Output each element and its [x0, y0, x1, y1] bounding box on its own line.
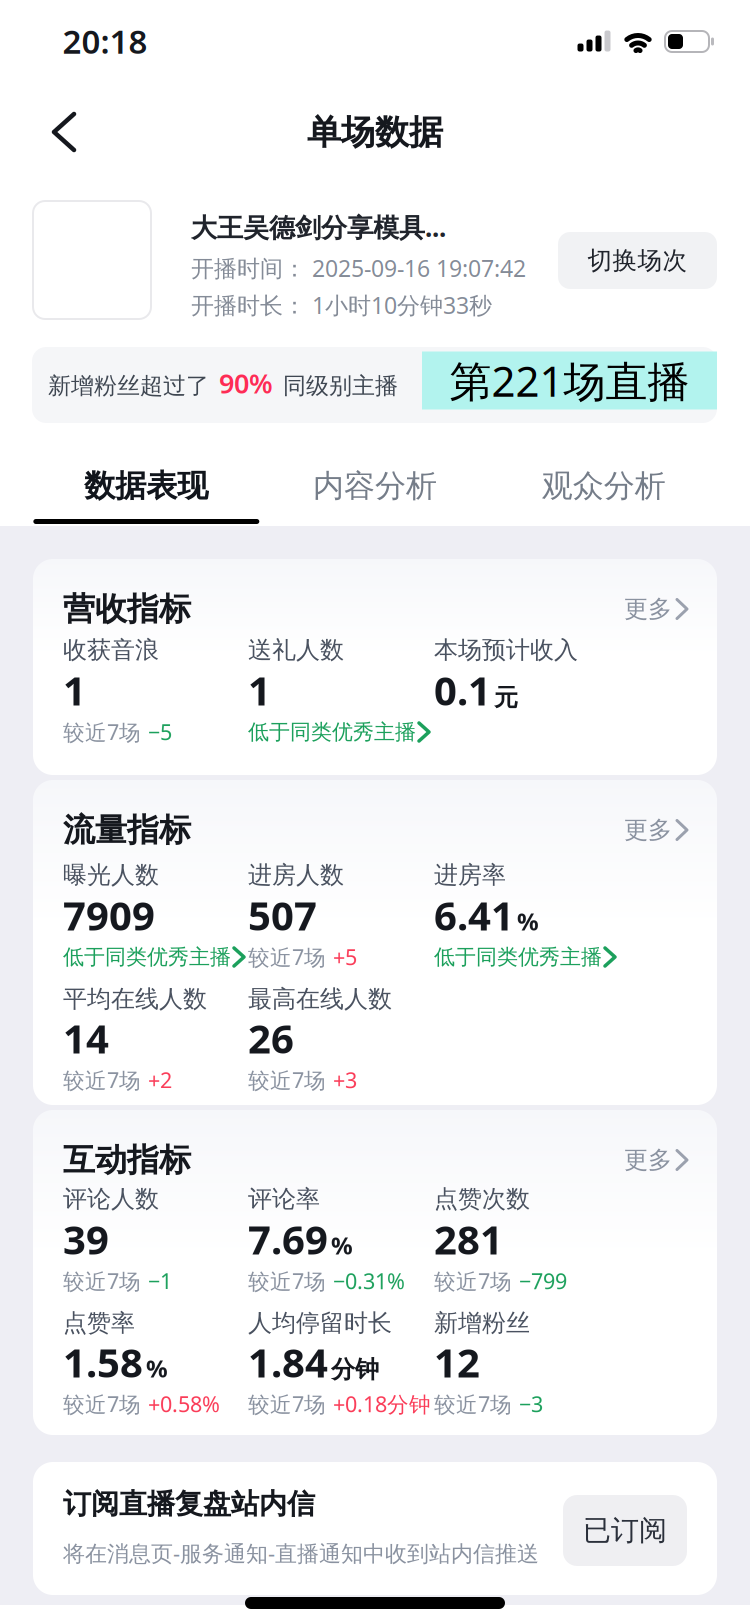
button[interactable]: 低于同类优秀主播 — [434, 944, 615, 970]
staticText: 90% — [219, 365, 273, 401]
staticText: 较近7场 — [63, 1065, 141, 1095]
button[interactable]: 低于同类优秀主播 — [63, 944, 244, 970]
staticText: 流量指标 — [63, 810, 191, 850]
staticText: % — [146, 1352, 168, 1385]
staticText: 第221场直播 — [449, 352, 689, 409]
staticText: 新增粉丝 — [434, 1308, 530, 1338]
staticText: 281 — [434, 1212, 503, 1266]
staticText: 7.69 — [248, 1212, 328, 1266]
staticText: +3 — [333, 1065, 357, 1095]
staticText: 将在消息页-服务通知-直播通知中收到站内信推送 — [63, 1538, 539, 1568]
staticText: 互动指标 — [63, 1140, 191, 1180]
staticText: 较近7场 — [63, 717, 141, 747]
staticText: 较近7场 — [434, 1389, 512, 1419]
staticText: 1.84 — [248, 1335, 328, 1389]
staticText: 观众分析 — [542, 466, 666, 506]
staticText: 开播时间： 2025-09-16 19:07:42 — [191, 252, 526, 284]
staticText: 较近7场 — [63, 1266, 141, 1296]
staticText: 更多 — [624, 594, 672, 624]
staticText: 26 — [248, 1011, 294, 1065]
staticText: 14 — [63, 1011, 109, 1065]
staticText: 进房人数 — [248, 860, 344, 890]
staticText: +0.18分钟 — [333, 1389, 431, 1419]
staticText: 订阅直播复盘站内信 — [63, 1486, 315, 1522]
staticText: 1.58 — [63, 1335, 143, 1389]
staticText: 更多 — [624, 815, 672, 845]
staticText: 507 — [248, 888, 317, 942]
staticText: 1 — [248, 663, 271, 717]
staticText: −5 — [148, 717, 172, 747]
staticText: 1 — [63, 663, 86, 717]
staticText: 平均在线人数 — [63, 984, 207, 1014]
staticText: +2 — [148, 1065, 172, 1095]
staticText: 较近7场 — [434, 1266, 512, 1296]
staticText: 已订阅 — [583, 1513, 667, 1548]
staticText: 进房率 — [434, 860, 506, 890]
button[interactable]: 低于同类优秀主播 — [248, 719, 429, 745]
staticText: 0.1 — [434, 663, 491, 717]
staticText: 较近7场 — [248, 1065, 326, 1095]
staticText: 较近7场 — [248, 1266, 326, 1296]
staticText: 点赞次数 — [434, 1184, 530, 1214]
staticText: 元 — [494, 682, 518, 713]
button[interactable]: 观众分析 — [489, 469, 718, 524]
staticText: 营收指标 — [63, 589, 191, 629]
staticText: −3 — [519, 1389, 543, 1419]
staticText: 较近7场 — [63, 1389, 141, 1419]
staticText: 曝光人数 — [63, 860, 159, 890]
button[interactable]: 返回 — [12, 100, 98, 164]
staticText: 39 — [63, 1212, 109, 1266]
staticText: 较近7场 — [248, 942, 326, 972]
staticText: 数据表现 — [84, 466, 208, 506]
staticText: 开播时长： 1小时10分钟33秒 — [191, 289, 492, 321]
button[interactable]: 内容分析 — [261, 469, 489, 524]
staticText: 最高在线人数 — [248, 984, 392, 1014]
staticText: 大王吴德剑分享模具... — [191, 209, 446, 245]
button[interactable]: 更多 — [624, 815, 687, 845]
button[interactable]: 数据表现 — [32, 469, 261, 524]
staticText: 低于同类优秀主播 — [248, 719, 416, 745]
staticText: 新增粉丝超过了 — [48, 371, 209, 400]
staticText: 点赞率 — [63, 1308, 135, 1338]
staticText: 20:18 — [62, 18, 147, 63]
staticText: 切换场次 — [587, 245, 687, 276]
staticText: 本场预计收入 — [434, 635, 578, 665]
staticText: 人均停留时长 — [248, 1308, 392, 1338]
staticText: 送礼人数 — [248, 635, 344, 665]
staticText: 低于同类优秀主播 — [434, 944, 602, 970]
staticText: % — [517, 905, 539, 938]
staticText: −0.31% — [333, 1266, 405, 1296]
staticText: 12 — [434, 1335, 480, 1389]
staticText: 更多 — [624, 1145, 672, 1175]
staticText: 6.41 — [434, 888, 514, 942]
button[interactable]: 更多 — [624, 1145, 687, 1175]
staticText: +0.58% — [148, 1389, 220, 1419]
staticText: 收获音浪 — [63, 635, 159, 665]
staticText: 7909 — [63, 888, 155, 942]
staticText: 较近7场 — [248, 1389, 326, 1419]
button[interactable]: 更多 — [624, 594, 687, 624]
staticText: 评论率 — [248, 1184, 320, 1214]
staticText: 低于同类优秀主播 — [63, 944, 231, 970]
staticText: 同级别主播 — [283, 371, 398, 400]
button[interactable]: 切换场次 — [558, 232, 717, 289]
staticText: −1 — [148, 1266, 172, 1296]
staticText: 评论人数 — [63, 1184, 159, 1214]
button[interactable]: 已订阅 — [563, 1495, 687, 1566]
staticText: +5 — [333, 942, 357, 972]
staticText: 分钟 — [331, 1354, 379, 1385]
staticText: % — [331, 1229, 353, 1262]
staticText: −799 — [519, 1266, 567, 1296]
staticText: 内容分析 — [313, 466, 437, 506]
staticText: 单场数据 — [307, 111, 443, 154]
